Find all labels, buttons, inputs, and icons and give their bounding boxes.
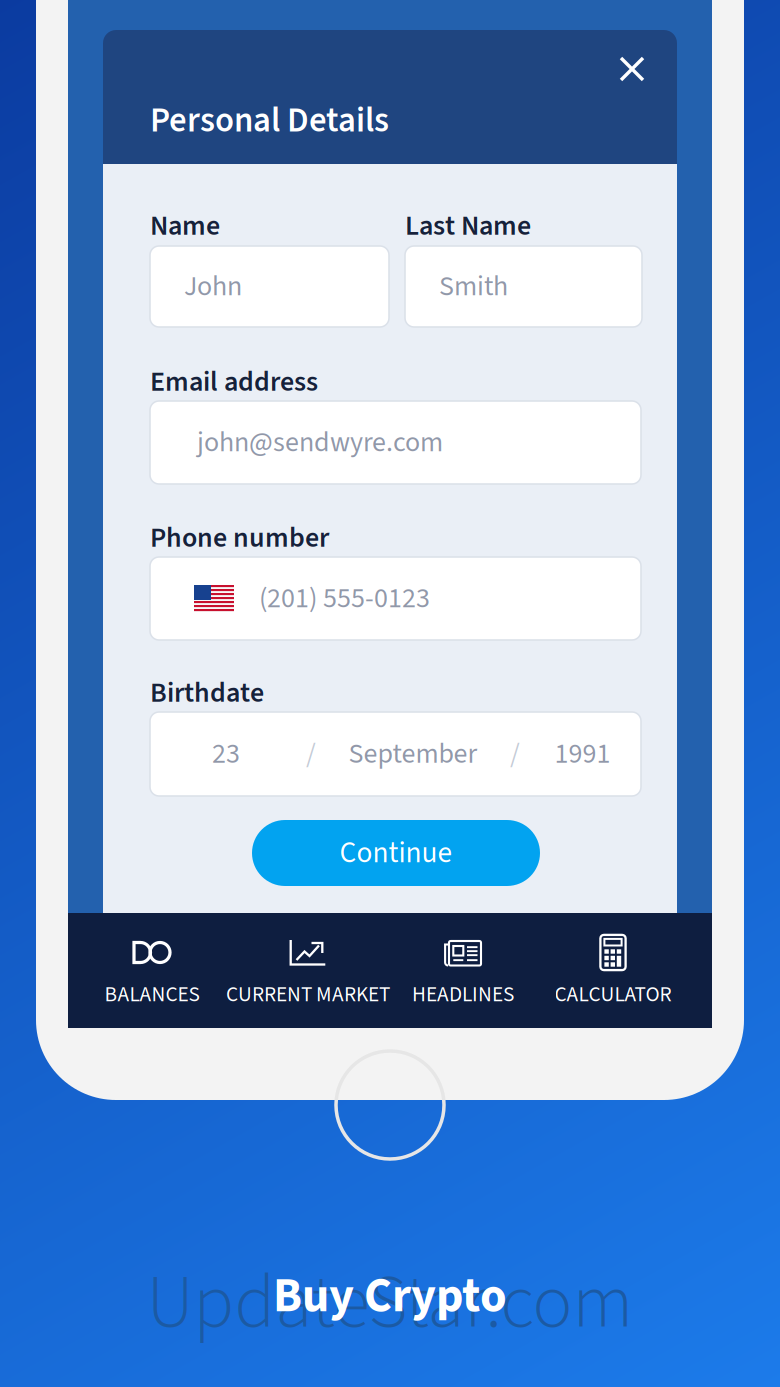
- staticText: Phone number: [150, 518, 329, 558]
- staticText: Smith: [439, 267, 508, 306]
- staticText: 23: [212, 734, 240, 774]
- staticText: Name: [150, 206, 220, 246]
- staticText: (201) 555-0123: [259, 579, 430, 618]
- staticText: Birthdate: [150, 673, 264, 713]
- button[interactable]: Continue: [252, 820, 540, 886]
- button[interactable]: HEADLINES: [388, 913, 538, 1028]
- staticText: john@sendwyre.com: [197, 423, 443, 462]
- staticText: Personal Details: [150, 96, 389, 145]
- staticText: CURRENT MARKET: [226, 979, 390, 1010]
- staticText: 1991: [554, 734, 610, 774]
- staticText: HEADLINES: [412, 979, 514, 1010]
- staticText: CALCULATOR: [554, 979, 671, 1010]
- staticText: John: [184, 267, 242, 306]
- staticText: UpdateStar.com: [146, 1250, 633, 1356]
- staticText: /: [306, 734, 316, 774]
- button[interactable]: CALCULATOR: [533, 913, 693, 1028]
- staticText: /: [510, 734, 520, 774]
- staticText: September: [348, 734, 477, 774]
- staticText: Last Name: [405, 206, 531, 246]
- staticText: BALANCES: [104, 979, 199, 1010]
- button[interactable]: CURRENT MARKET: [218, 913, 398, 1028]
- button[interactable]: Close: [604, 41, 660, 97]
- staticText: Buy Crypto: [273, 1262, 507, 1330]
- button[interactable]: BALANCES: [72, 913, 232, 1028]
- staticText: Continue: [339, 832, 452, 874]
- staticText: Email address: [150, 362, 318, 402]
